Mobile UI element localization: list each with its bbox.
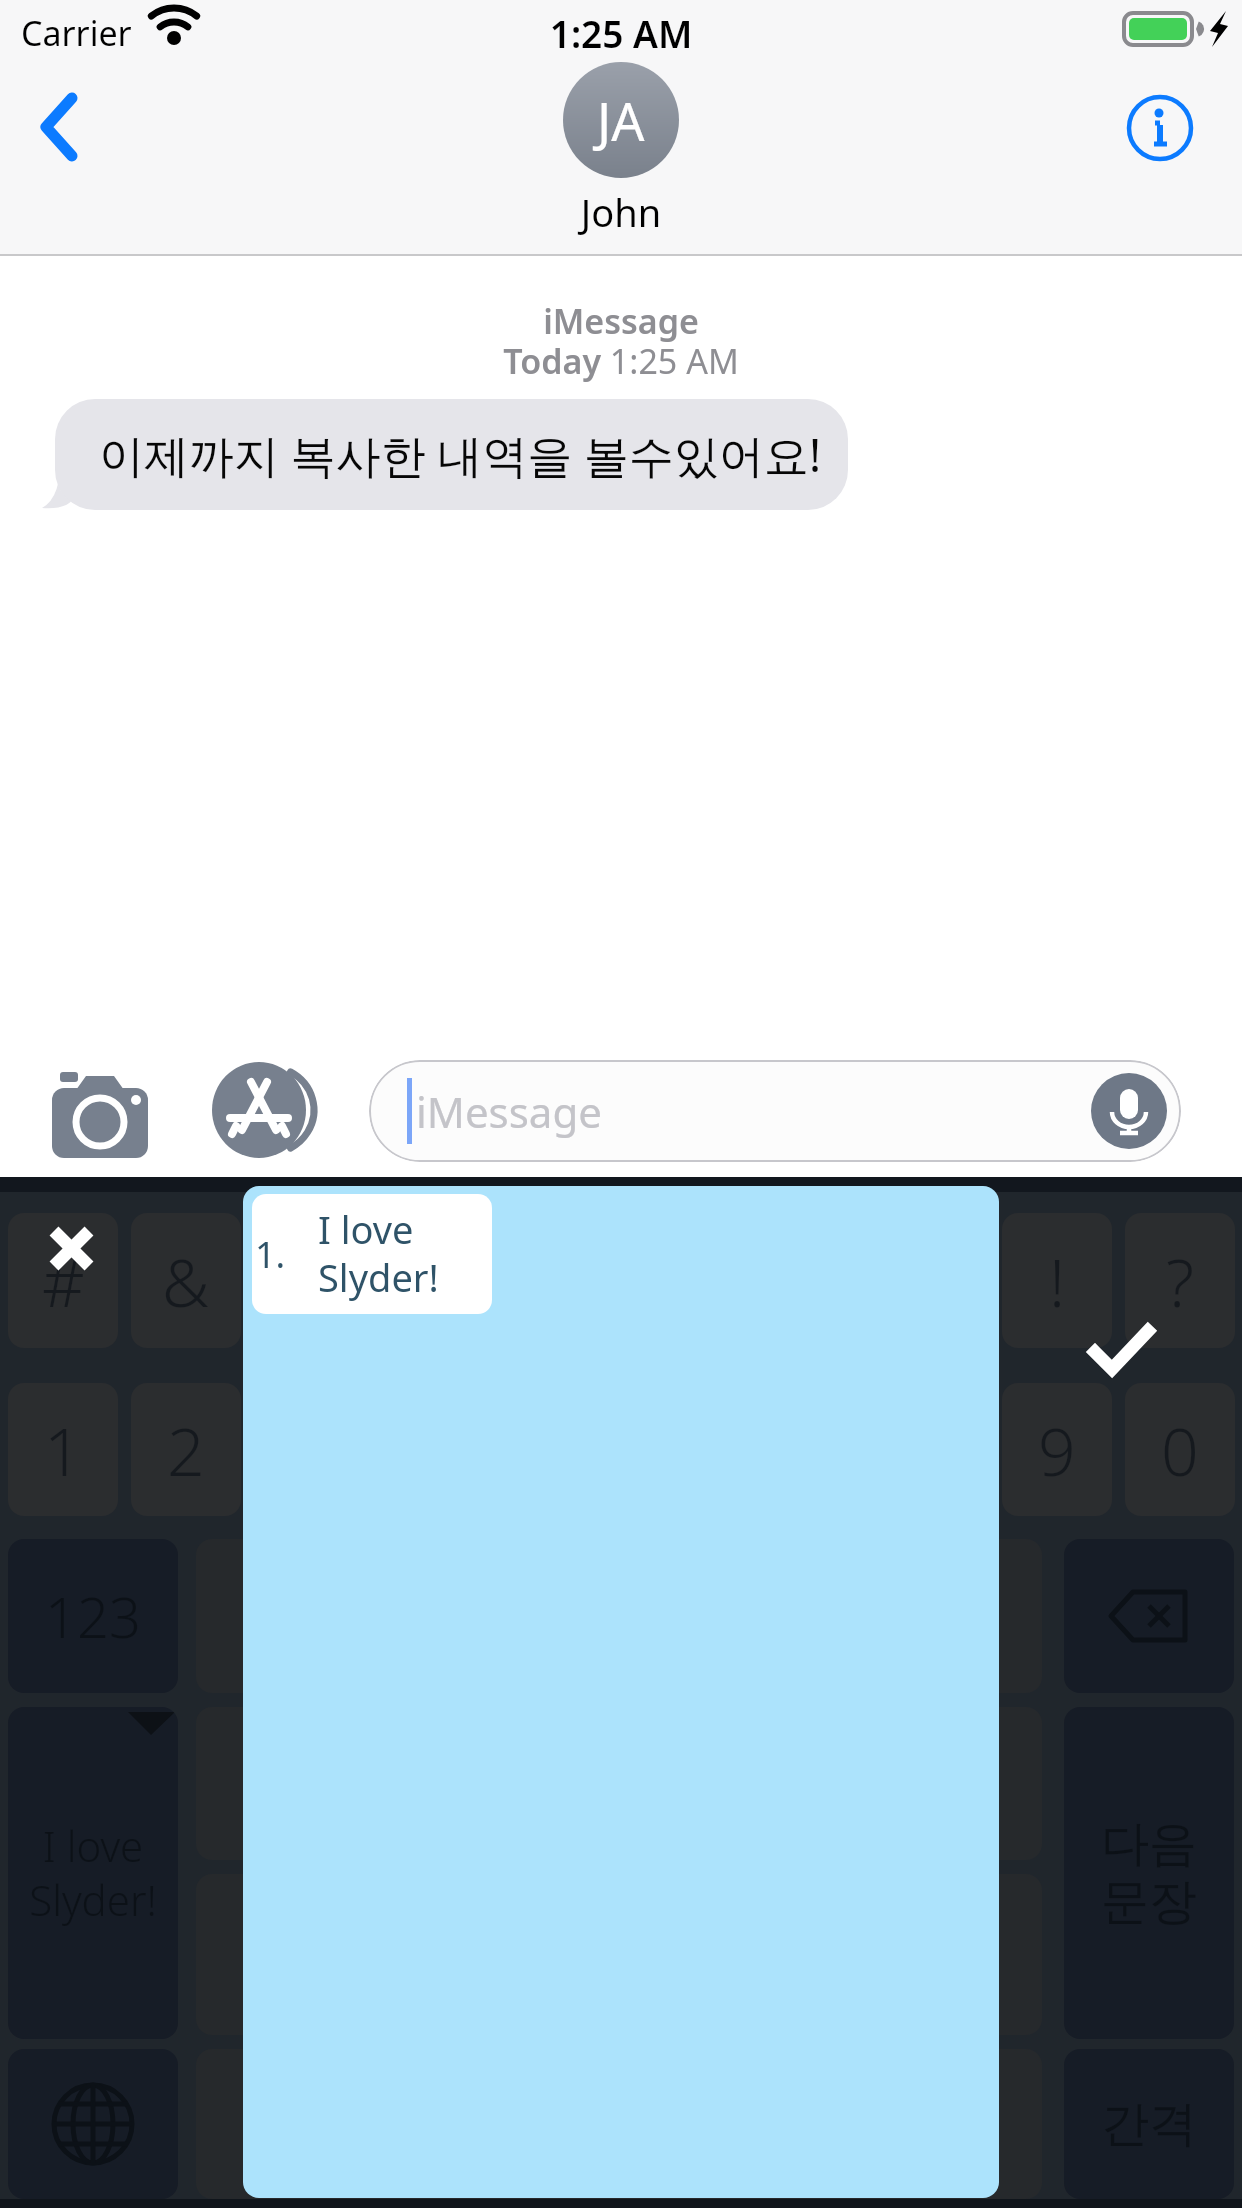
button[interactable] (1091, 1073, 1167, 1149)
staticText: 다음 문장 (1101, 1814, 1197, 1933)
staticText: 이제까지 복사한 내역을 볼수있어요! (99, 424, 822, 485)
staticText: Today 1:25 AM (0, 338, 1242, 384)
button[interactable] (8, 2049, 178, 2199)
staticText: 간격 (1101, 2094, 1197, 2154)
button[interactable] (40, 1060, 160, 1164)
staticText: ? (1166, 1236, 1194, 1326)
staticText: Carrier (21, 10, 132, 56)
button[interactable] (196, 1707, 1042, 1860)
button[interactable] (34, 1210, 110, 1286)
button[interactable] (196, 2049, 1042, 2199)
staticText: ! (1049, 1236, 1066, 1326)
button[interactable]: 2 (131, 1383, 241, 1516)
staticText: 1 (44, 1405, 82, 1495)
button[interactable] (24, 80, 104, 170)
staticText: # (42, 1236, 85, 1326)
staticText: 1. (255, 1230, 286, 1279)
button[interactable] (1080, 1316, 1164, 1384)
button[interactable] (196, 1539, 1042, 1693)
button[interactable]: 1. (252, 1194, 492, 1314)
staticText: 1:25 AM (0, 8, 1242, 58)
staticText: JA (597, 85, 645, 156)
button[interactable]: 9 (1002, 1383, 1112, 1516)
staticText: iMessage (0, 298, 1242, 344)
staticText: & (162, 1236, 210, 1326)
button[interactable]: 0 (1125, 1383, 1235, 1516)
staticText: 0 (1161, 1405, 1199, 1495)
staticText: I love Slyder! (29, 1817, 157, 1929)
staticText: I love Slyder! (318, 1203, 439, 1304)
staticText: iMessage (416, 1083, 602, 1140)
button[interactable] (1064, 1539, 1234, 1693)
staticText: John (0, 186, 1242, 238)
staticText: 2 (167, 1405, 205, 1495)
button[interactable]: JA (563, 62, 679, 178)
staticText: 9 (1038, 1405, 1076, 1495)
staticText: 123 (45, 1578, 141, 1654)
button[interactable] (1126, 94, 1194, 162)
button[interactable]: 이제까지 복사한 내역을 볼수있어요! (55, 399, 848, 510)
button[interactable] (196, 1874, 1042, 2035)
button[interactable]: ! (1002, 1213, 1112, 1348)
button[interactable] (212, 1062, 316, 1162)
button[interactable]: # (8, 1213, 118, 1348)
button[interactable]: & (131, 1213, 241, 1348)
button[interactable]: iMessage (369, 1060, 1181, 1162)
button[interactable]: ? (1125, 1213, 1235, 1348)
